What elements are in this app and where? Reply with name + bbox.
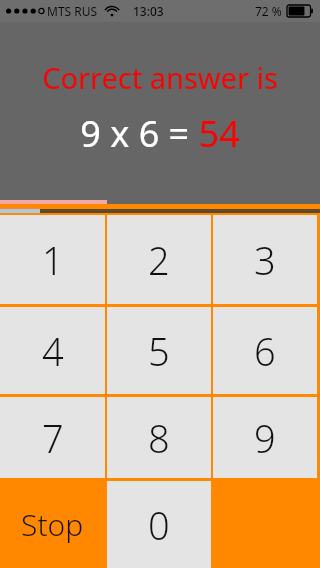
button[interactable]: 6	[213, 307, 317, 394]
staticText: 1	[42, 234, 64, 286]
staticText: 7	[42, 412, 64, 464]
staticText: MTS RUS	[47, 3, 98, 19]
staticText: 6	[254, 325, 276, 377]
staticText: 72 %	[255, 3, 282, 19]
button[interactable]: 7	[0, 397, 105, 478]
staticText: 2	[148, 234, 170, 286]
button[interactable]: 9	[213, 397, 317, 478]
button[interactable]: 3	[213, 215, 317, 304]
staticText: 4	[42, 325, 64, 377]
staticText: 9	[254, 412, 276, 464]
button[interactable]: 1	[0, 215, 105, 304]
staticText: 8	[148, 412, 170, 464]
staticText: Stop	[21, 504, 84, 545]
staticText: Correct answer is	[42, 58, 278, 97]
button[interactable]: Stop	[0, 481, 105, 568]
staticText: 0	[148, 499, 170, 551]
button[interactable]: 4	[0, 307, 105, 394]
button[interactable]: 5	[107, 307, 211, 394]
staticText: 9 x 6 = 54	[80, 109, 240, 158]
staticText: 3	[254, 234, 276, 286]
button[interactable]: 8	[107, 397, 211, 478]
staticText: 13:03	[133, 3, 164, 19]
button[interactable]: 0	[107, 481, 211, 568]
button[interactable]: 2	[107, 215, 211, 304]
staticText: 5	[148, 325, 170, 377]
